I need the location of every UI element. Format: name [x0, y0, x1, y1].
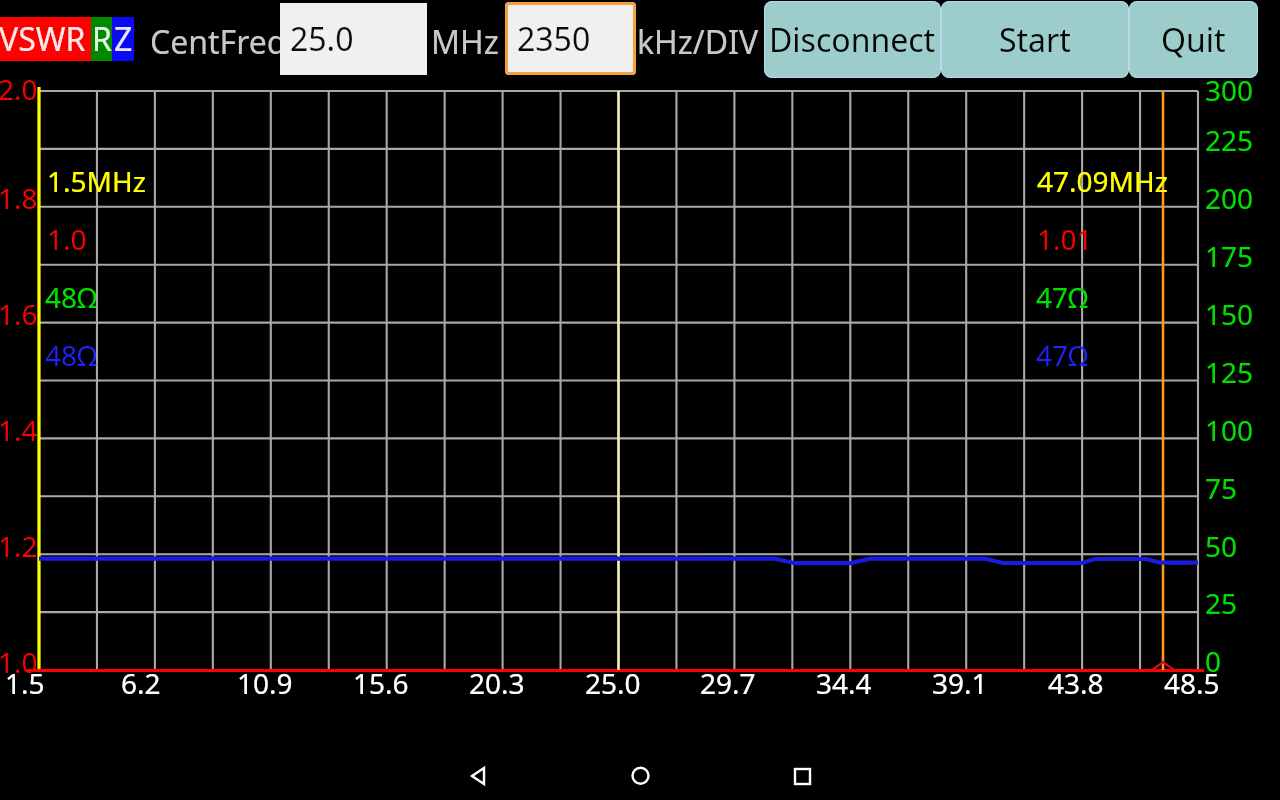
staticText: 150: [1205, 295, 1254, 333]
button[interactable]: Z: [112, 17, 134, 61]
staticText: 75: [1205, 469, 1238, 507]
button[interactable]: 2350: [505, 2, 636, 75]
staticText: 48Ω: [45, 278, 98, 316]
button[interactable]: 25.0: [280, 3, 427, 75]
staticText: 200: [1205, 179, 1254, 217]
button[interactable]: Recent apps: [762, 740, 842, 800]
staticText: 43.8: [1048, 664, 1104, 702]
staticText: 125: [1205, 353, 1254, 391]
staticText: 6.2: [121, 664, 161, 702]
staticText: Disconnect: [769, 18, 936, 62]
staticText: 50: [1205, 527, 1238, 565]
staticText: 2350: [517, 17, 591, 61]
staticText: 15.6: [353, 664, 409, 702]
staticText: 47.09MHz: [1037, 162, 1168, 200]
staticText: 47Ω: [1036, 278, 1089, 316]
staticText: 47Ω: [1036, 336, 1089, 374]
staticText: CentFreq: [150, 20, 287, 64]
staticText: 1.5MHz: [47, 162, 146, 200]
staticText: 1.0: [47, 220, 87, 258]
staticText: 25: [1205, 584, 1238, 622]
staticText: 0: [1205, 642, 1222, 680]
staticText: 1.2: [0, 527, 38, 565]
button[interactable]: VSWR: [0, 17, 91, 61]
staticText: Quit: [1161, 18, 1226, 62]
staticText: 1.5: [5, 664, 45, 702]
staticText: 25.0: [585, 664, 641, 702]
staticText: 100: [1205, 411, 1254, 449]
staticText: 1.4: [0, 411, 38, 449]
button[interactable]: Start: [941, 1, 1129, 78]
staticText: 225: [1205, 121, 1254, 159]
staticText: MHz: [431, 20, 499, 64]
staticText: 300: [1205, 71, 1254, 109]
staticText: 1.01: [1037, 220, 1093, 258]
staticText: 34.4: [816, 664, 872, 702]
staticText: Start: [999, 18, 1071, 62]
button[interactable]: Disconnect: [764, 1, 941, 78]
button[interactable]: Home: [600, 740, 680, 800]
staticText: Z: [114, 17, 133, 61]
button[interactable]: Back: [438, 740, 518, 800]
staticText: 29.7: [700, 664, 756, 702]
staticText: 48.5: [1164, 664, 1220, 702]
staticText: 48Ω: [45, 336, 98, 374]
staticText: 39.1: [932, 664, 988, 702]
staticText: 25.0: [290, 17, 354, 61]
staticText: 2.0: [0, 70, 38, 108]
staticText: kHz/DIV: [637, 20, 759, 64]
staticText: R: [92, 17, 112, 61]
staticText: 1.8: [0, 179, 38, 217]
button[interactable]: Quit: [1129, 1, 1258, 78]
staticText: 1.6: [0, 295, 38, 333]
button[interactable]: R: [91, 17, 112, 61]
staticText: 1.0: [0, 643, 38, 681]
staticText: 10.9: [237, 664, 293, 702]
staticText: 175: [1205, 237, 1254, 275]
staticText: 20.3: [469, 664, 525, 702]
staticText: VSWR: [0, 17, 86, 61]
